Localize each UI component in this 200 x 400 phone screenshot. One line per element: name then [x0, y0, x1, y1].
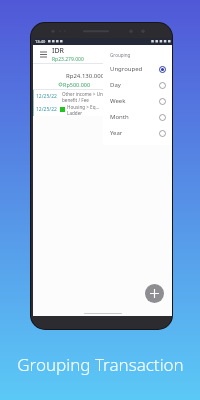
button[interactable]: 12/25/22 — [33, 103, 172, 116]
button[interactable]: Open navigation menu — [37, 48, 49, 60]
button[interactable]: 12/25/22 — [33, 90, 172, 103]
button[interactable]: Add transaction — [145, 284, 164, 303]
staticText: Rp24.130.000 - Rp851.000 — [66, 72, 139, 80]
staticText: Rp1.351.000 — [114, 81, 146, 88]
button[interactable]: Week — [103, 93, 172, 109]
staticText: Grouping — [110, 52, 131, 58]
staticText: Housing > Eq… — [67, 104, 100, 110]
button[interactable]: Year — [103, 125, 172, 141]
staticText: Week — [110, 97, 126, 105]
button[interactable]: Ungrouped — [103, 61, 172, 77]
staticText: Ungrouped — [110, 65, 143, 73]
staticText: Rp23.279.000 — [52, 56, 84, 63]
staticText: Ladder — [67, 110, 83, 116]
staticText: Other income > Un… — [62, 91, 107, 97]
staticText: IDR — [52, 46, 65, 56]
staticText: benefit / Fee — [62, 97, 89, 103]
staticText: Total — [156, 65, 168, 72]
staticText: Rp500.000 — [63, 81, 91, 88]
staticText: 13:40 — [35, 39, 46, 44]
button[interactable]: Day — [103, 77, 172, 93]
staticText: Day — [110, 81, 121, 89]
staticText: Month — [110, 113, 129, 121]
staticText: 12/25/22 — [36, 93, 57, 100]
staticText: Grouping Transaction — [17, 353, 184, 376]
staticText: Year — [110, 129, 123, 137]
button[interactable]: Month — [103, 109, 172, 125]
staticText: 12/25/22 — [36, 106, 57, 113]
